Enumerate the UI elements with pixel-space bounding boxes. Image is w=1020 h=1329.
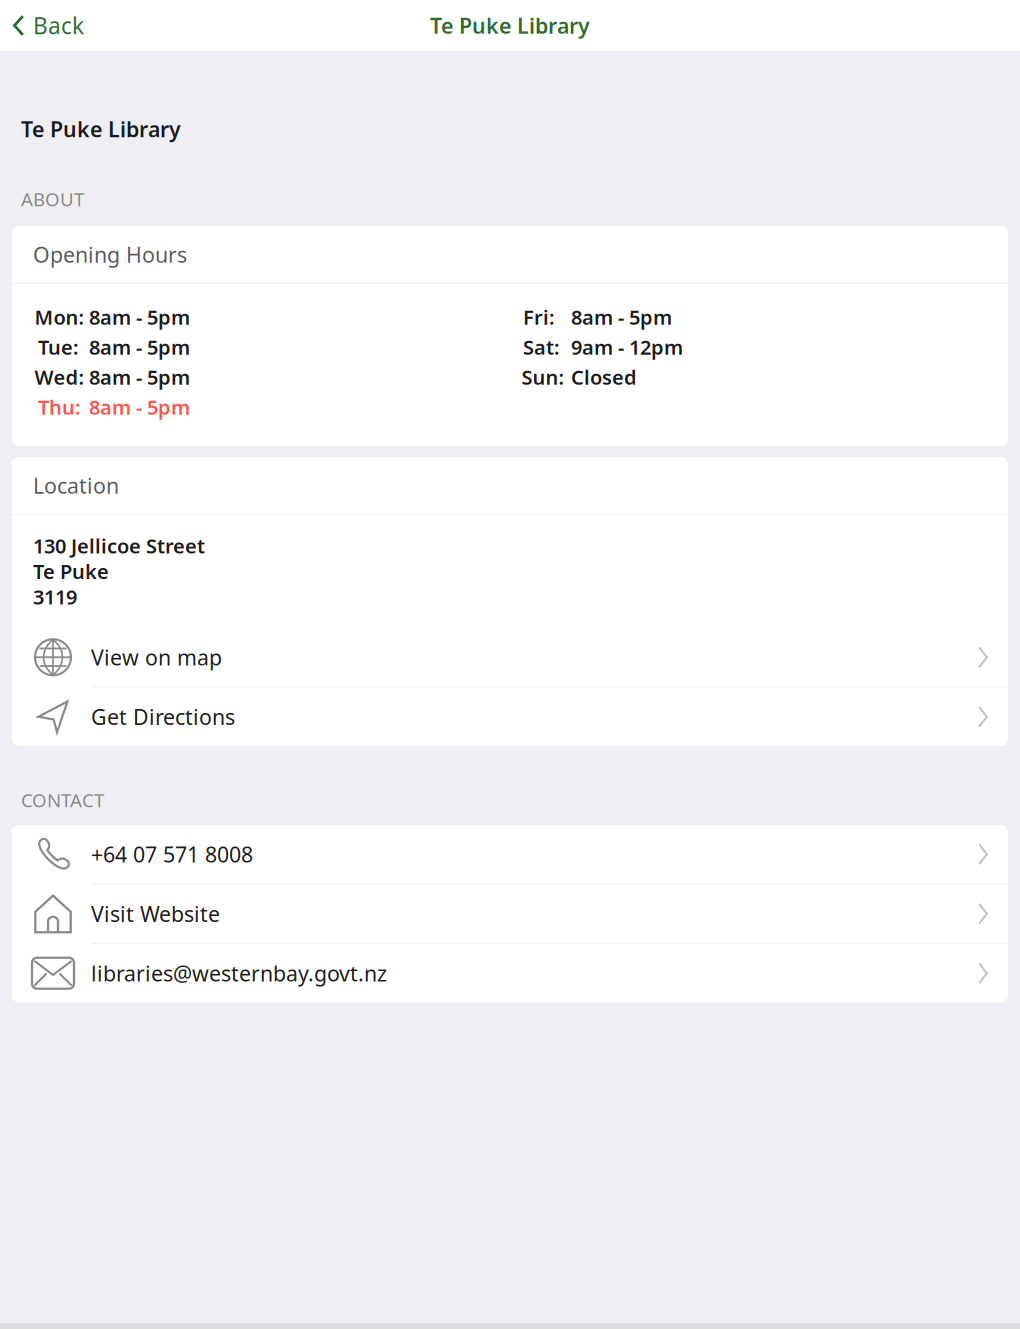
staticText: 130 Jellicoe Street xyxy=(33,532,205,559)
staticText: 8am - 5pm xyxy=(571,304,672,330)
staticText: libraries@westernbay.govt.nz xyxy=(91,959,387,987)
staticText: Tue: xyxy=(38,334,79,360)
staticText: 8am - 5pm xyxy=(89,364,190,390)
button[interactable]: +64 07 571 8008 xyxy=(12,825,1008,883)
button[interactable]: libraries@westernbay.govt.nz xyxy=(12,944,1008,1002)
staticText: +64 07 571 8008 xyxy=(91,840,253,868)
staticText: Closed xyxy=(571,364,637,390)
staticText: 8am - 5pm xyxy=(89,394,190,420)
staticText: Opening Hours xyxy=(33,240,187,269)
staticText: Sat: xyxy=(523,334,560,360)
staticText: Te Puke Library xyxy=(430,11,590,40)
staticText: CONTACT xyxy=(21,788,104,812)
staticText: Mon: xyxy=(34,304,84,330)
staticText: Te Puke xyxy=(33,558,109,585)
button[interactable]: Back xyxy=(0,0,98,51)
staticText: 9am - 12pm xyxy=(571,334,683,360)
staticText: Visit Website xyxy=(91,900,220,928)
staticText: Get Directions xyxy=(91,703,235,731)
staticText: Location xyxy=(33,471,119,500)
staticText: Sun: xyxy=(521,364,564,390)
staticText: Wed: xyxy=(34,364,84,390)
button[interactable]: Get Directions xyxy=(12,687,1008,746)
staticText: Back xyxy=(33,10,84,40)
staticText: Te Puke Library xyxy=(21,115,181,143)
staticText: 3119 xyxy=(33,583,77,610)
staticText: Fri: xyxy=(523,304,555,330)
button[interactable]: View on map xyxy=(12,628,1008,686)
staticText: ABOUT xyxy=(21,187,84,211)
button[interactable]: Visit Website xyxy=(12,884,1008,943)
staticText: View on map xyxy=(91,643,222,671)
staticText: 8am - 5pm xyxy=(89,304,190,330)
staticText: Thu: xyxy=(38,394,81,420)
staticText: 8am - 5pm xyxy=(89,334,190,360)
